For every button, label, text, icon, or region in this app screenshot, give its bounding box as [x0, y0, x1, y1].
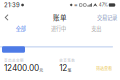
- staticText: 筛选查看: [96, 65, 112, 71]
- staticText: 21:39: [4, 1, 20, 9]
- staticText: 支出总金额: [4, 57, 24, 63]
- button[interactable]: 交易记录: [97, 12, 117, 23]
- button[interactable]: 支出: [77, 24, 115, 33]
- staticText: 账单: [53, 13, 67, 22]
- button[interactable]: 全部: [2, 24, 40, 33]
- staticText: 12: [59, 63, 67, 73]
- button[interactable]: Back: [1, 12, 12, 23]
- staticText: 47%: [99, 2, 108, 8]
- staticText: ≡: [74, 2, 78, 7]
- staticText: 进行中: [51, 25, 66, 32]
- staticText: 支出: [91, 25, 101, 32]
- staticText: 交易记录: [97, 14, 117, 21]
- staticText: 12400.00: [4, 63, 39, 73]
- staticText: 笔: [68, 67, 72, 73]
- button[interactable]: 筛选查看: [96, 65, 112, 73]
- staticText: 收支笔数: [59, 57, 75, 63]
- staticText: 元: [39, 67, 43, 73]
- button[interactable]: 进行中: [40, 24, 77, 33]
- staticText: 全部: [16, 25, 26, 32]
